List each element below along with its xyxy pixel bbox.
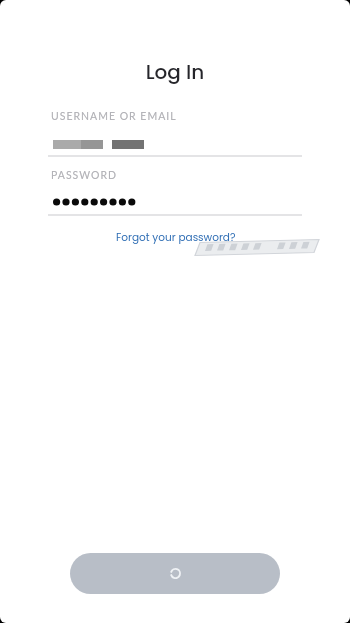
- staticText: USERNAME OR EMAIL: [51, 110, 177, 123]
- button[interactable]: Password field: [48, 163, 302, 215]
- button[interactable]: Log in, signing in: [70, 553, 280, 594]
- button[interactable]: Username or email field: [48, 104, 302, 156]
- staticText: Forgot your password?: [116, 230, 236, 245]
- button[interactable]: Forgot your password?: [114, 226, 234, 246]
- staticText: Log In: [0, 58, 350, 86]
- staticText: PASSWORD: [51, 169, 117, 182]
